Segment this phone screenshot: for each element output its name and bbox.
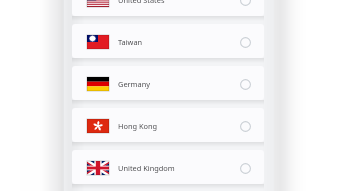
button[interactable]: Hong Kong — [72, 108, 264, 142]
button[interactable]: Taiwan — [72, 24, 264, 58]
staticText: Hong Kong — [118, 121, 158, 131]
staticText: United Kingdom — [118, 163, 175, 173]
staticText: Taiwan — [118, 37, 143, 47]
staticText: United States — [118, 0, 165, 5]
button[interactable]: United Kingdom — [72, 150, 264, 184]
button[interactable]: United States — [72, 0, 264, 16]
staticText: Germany — [118, 79, 150, 89]
button[interactable]: Germany — [72, 66, 264, 100]
